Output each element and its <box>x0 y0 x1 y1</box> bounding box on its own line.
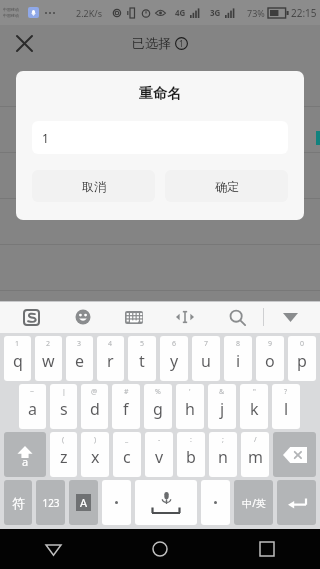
staticText: 123 <box>42 496 60 510</box>
button[interactable]: 取消 <box>32 170 155 202</box>
staticText: 2.2K/s <box>76 7 102 19</box>
staticText: 中国移动 <box>3 7 19 12</box>
staticText: @ <box>91 387 98 397</box>
staticText: 73% <box>247 7 265 19</box>
button[interactable]: Emoji <box>57 301 108 333</box>
staticText: 2 <box>46 339 51 349</box>
staticText: 中/英 <box>242 496 266 510</box>
button[interactable]: Search <box>211 301 263 333</box>
button[interactable]: 6 <box>160 336 188 381</box>
button[interactable]: 123 <box>36 480 65 525</box>
staticText: 4 <box>108 339 113 349</box>
button[interactable]: 0 <box>288 336 316 381</box>
button[interactable]: # <box>112 384 140 429</box>
button[interactable]: 确定 <box>165 170 288 202</box>
staticText: ) <box>94 435 97 445</box>
staticText: 取消 <box>82 179 106 194</box>
button[interactable]: Close <box>8 27 40 59</box>
button[interactable]: 8 <box>224 336 252 381</box>
staticText: k <box>250 398 259 420</box>
button[interactable]: Sogou input <box>6 301 57 333</box>
staticText: 5 <box>140 339 145 349</box>
button[interactable]: & <box>208 384 236 429</box>
staticText: & <box>219 387 225 397</box>
staticText: r <box>107 350 114 372</box>
staticText: f <box>123 398 129 420</box>
staticText: 22:15 <box>291 6 317 20</box>
button[interactable]: Home <box>106 529 213 569</box>
staticText: z <box>60 446 68 468</box>
button[interactable]: Punctuation <box>102 480 131 525</box>
button[interactable]: 符 <box>4 480 32 525</box>
staticText: i <box>236 350 241 372</box>
button[interactable]: Punctuation <box>201 480 230 525</box>
staticText: c <box>123 446 131 468</box>
button[interactable]: Enter <box>277 480 316 525</box>
button[interactable]: ) <box>81 432 109 477</box>
staticText: 6 <box>172 339 177 349</box>
staticText: w <box>42 350 55 372</box>
staticText: : <box>190 435 192 445</box>
button[interactable]: ~ <box>19 384 46 429</box>
button[interactable]: _ <box>113 432 141 477</box>
staticText: 4G <box>175 7 186 18</box>
staticText: p <box>297 350 307 372</box>
button[interactable]: @ <box>81 384 108 429</box>
staticText: % <box>155 387 161 397</box>
button[interactable]: / <box>241 432 269 477</box>
button[interactable]: " <box>240 384 268 429</box>
button[interactable]: 5 <box>128 336 156 381</box>
staticText: o <box>265 350 275 372</box>
button[interactable]: Recents <box>213 529 320 569</box>
button[interactable]: ? <box>272 384 300 429</box>
staticText: d <box>90 398 100 420</box>
button[interactable]: Caps <box>69 480 98 525</box>
staticText: _ <box>125 435 129 445</box>
staticText: 重命名 <box>139 85 181 103</box>
button[interactable]: 2 <box>35 336 62 381</box>
button[interactable]: | <box>50 384 77 429</box>
staticText: g <box>153 398 163 420</box>
button[interactable]: 1 <box>4 336 31 381</box>
button[interactable]: 4 <box>97 336 124 381</box>
staticText: x <box>91 446 100 468</box>
staticText: u <box>201 350 211 372</box>
staticText: | <box>62 387 66 397</box>
button[interactable]: Space and voice input <box>135 480 197 525</box>
staticText: 3 <box>77 339 82 349</box>
button[interactable]: Move cursor <box>159 301 211 333</box>
button[interactable]: Back <box>0 529 106 569</box>
button[interactable]: ' <box>176 384 204 429</box>
button[interactable]: - <box>145 432 173 477</box>
staticText: h <box>185 398 195 420</box>
staticText: 确定 <box>215 179 239 194</box>
staticText: e <box>75 350 85 372</box>
button[interactable]: ( <box>50 432 77 477</box>
staticText: 已选择 <box>132 35 171 51</box>
staticText: / <box>254 435 257 445</box>
staticText: 1 <box>15 339 20 349</box>
button[interactable]: Backspace <box>273 432 316 477</box>
staticText: m <box>248 446 263 468</box>
button[interactable]: % <box>144 384 172 429</box>
button[interactable]: 中/英 <box>234 480 273 525</box>
staticText: ' <box>189 387 191 397</box>
button[interactable]: Hide keyboard <box>264 301 316 333</box>
staticText: ~ <box>30 387 35 397</box>
button[interactable]: : <box>177 432 205 477</box>
staticText: 8 <box>236 339 241 349</box>
button[interactable]: Keyboard layout <box>108 301 159 333</box>
staticText: a <box>28 398 37 420</box>
button[interactable]: 3 <box>66 336 93 381</box>
staticText: l <box>284 398 289 420</box>
staticText: - <box>158 435 161 445</box>
staticText: v <box>155 446 164 468</box>
button[interactable]: 7 <box>192 336 220 381</box>
staticText: # <box>124 387 129 397</box>
staticText: t <box>139 350 145 372</box>
staticText: ( <box>62 435 65 445</box>
button[interactable]: 1 <box>32 121 288 154</box>
button[interactable]: 9 <box>256 336 284 381</box>
button[interactable]: Shift <box>4 432 46 477</box>
button[interactable]: ; <box>209 432 237 477</box>
